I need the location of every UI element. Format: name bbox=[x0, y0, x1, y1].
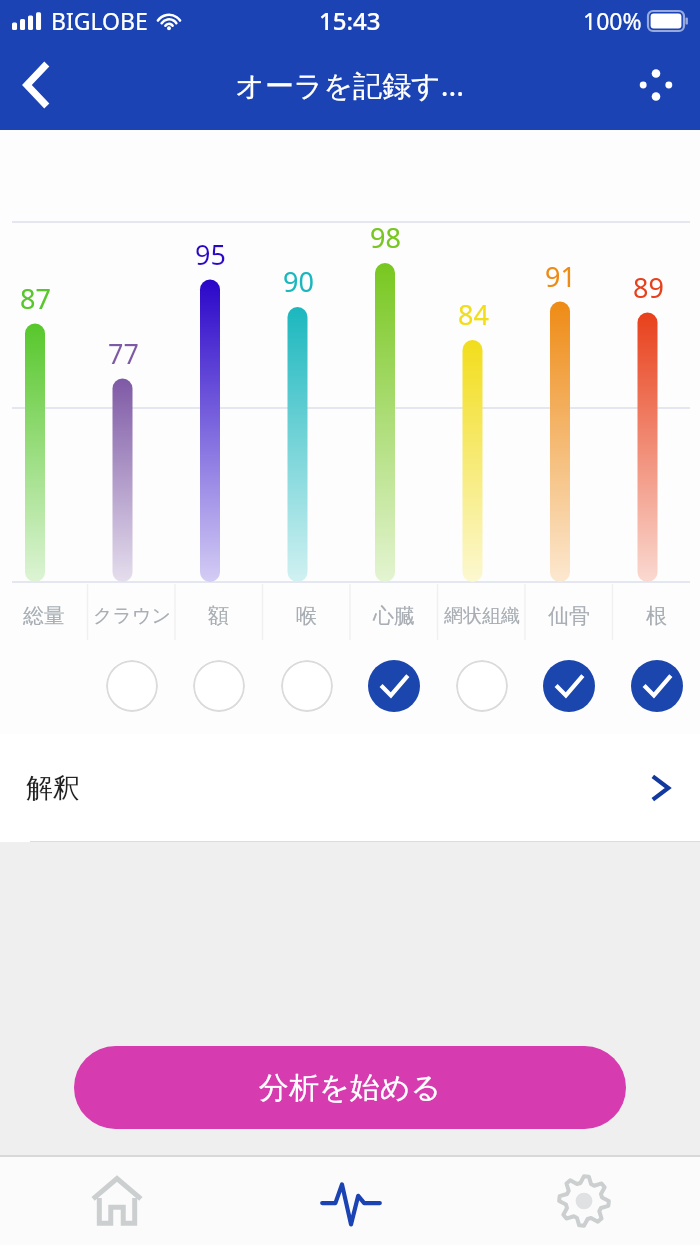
button[interactable]: クラウンを選択 bbox=[88, 642, 175, 730]
button[interactable]: 額を選択 bbox=[175, 642, 262, 730]
staticText: BIGLOBE bbox=[51, 5, 148, 36]
staticText: 額 bbox=[208, 603, 229, 629]
button[interactable]: 喉を選択 bbox=[263, 642, 350, 730]
staticText: 心臓 bbox=[373, 603, 415, 629]
button[interactable]: 設定 bbox=[467, 1157, 700, 1245]
staticText: クラウン bbox=[93, 604, 171, 628]
button[interactable]: 仙骨を選択 bbox=[525, 642, 612, 730]
staticText: 95 bbox=[195, 236, 226, 273]
staticText: 98 bbox=[370, 219, 401, 256]
button[interactable]: 網状組織を選択 bbox=[438, 642, 525, 730]
button[interactable]: 計測 bbox=[234, 1157, 467, 1245]
staticText: 77 bbox=[108, 335, 139, 372]
button[interactable]: 分析を始める bbox=[74, 1046, 626, 1129]
staticText: 総量 bbox=[23, 603, 65, 629]
staticText: 喉 bbox=[296, 603, 317, 629]
staticText: 根 bbox=[646, 603, 667, 629]
other: 解釈を開く bbox=[648, 775, 674, 801]
button[interactable]: 解釈 bbox=[0, 734, 700, 842]
button[interactable]: 根を選択 bbox=[613, 642, 700, 730]
button[interactable]: ホーム bbox=[0, 1157, 234, 1245]
staticText: 分析を始める bbox=[259, 1069, 442, 1107]
staticText: 解釈 bbox=[26, 771, 80, 805]
staticText: 89 bbox=[633, 269, 664, 306]
staticText: 網状組織 bbox=[444, 604, 520, 628]
staticText: 100% bbox=[583, 5, 642, 36]
staticText: 91 bbox=[545, 258, 576, 295]
staticText: 仙骨 bbox=[548, 603, 590, 629]
button[interactable]: その他のオプション bbox=[628, 57, 684, 113]
staticText: 90 bbox=[283, 263, 314, 300]
staticText: 87 bbox=[20, 280, 51, 317]
staticText: 15:43 bbox=[319, 4, 381, 37]
staticText: オーラを記録す... bbox=[235, 65, 465, 105]
staticText: 84 bbox=[458, 296, 489, 333]
button[interactable]: 心臓を選択 bbox=[350, 642, 437, 730]
button[interactable]: 戻る bbox=[0, 49, 72, 121]
